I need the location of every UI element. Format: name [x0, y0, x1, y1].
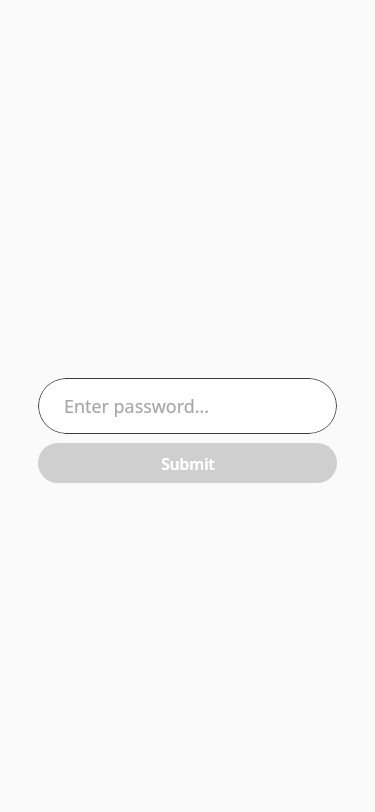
button[interactable]: Password input field: [38, 378, 337, 434]
staticText: Enter password...: [64, 394, 210, 418]
button[interactable]: Submit: [38, 443, 337, 483]
staticText: Submit: [161, 453, 215, 474]
